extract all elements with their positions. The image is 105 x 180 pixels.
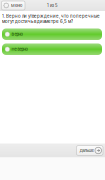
staticText: Дальше	[79, 148, 93, 153]
staticText: 1. Верно ли утверждение, что поперечные …	[2, 13, 100, 24]
button[interactable]: Не верно	[2, 43, 102, 55]
button[interactable]: Верно	[2, 28, 102, 40]
button[interactable]: Меню	[1, 1, 25, 10]
staticText: Не верно	[12, 47, 28, 52]
staticText: Верно	[12, 32, 23, 37]
staticText: 1 из 5	[47, 3, 58, 8]
button[interactable]: Дальше	[76, 146, 103, 155]
staticText: Меню	[11, 3, 22, 8]
